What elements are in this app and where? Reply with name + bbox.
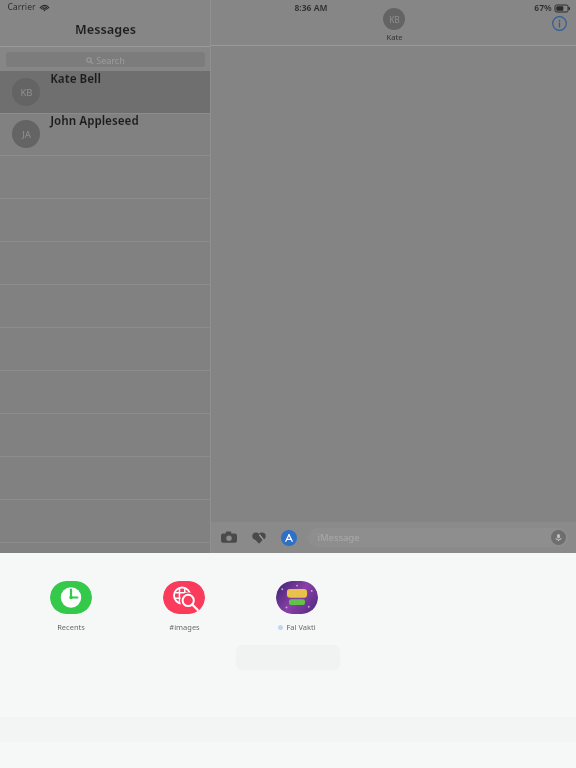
staticText: John Appleseed bbox=[50, 113, 139, 129]
staticText: #images bbox=[169, 622, 200, 632]
button[interactable]: #images bbox=[149, 581, 219, 632]
staticText: Fal Vakti bbox=[286, 622, 316, 632]
staticText: JA bbox=[22, 128, 31, 141]
button[interactable]: Camera bbox=[219, 528, 239, 548]
button[interactable]: JA bbox=[0, 113, 211, 155]
staticText: Carrier bbox=[7, 1, 36, 13]
staticText: Kate Bell bbox=[50, 71, 101, 87]
button[interactable]: Fal Vakti bbox=[262, 581, 332, 632]
button[interactable]: App Store bbox=[279, 528, 299, 548]
staticText: KB bbox=[20, 86, 33, 99]
staticText: Recents bbox=[57, 622, 85, 632]
button[interactable]: iMessage bbox=[308, 528, 568, 547]
button[interactable]: Details bbox=[550, 14, 568, 32]
staticText: Messages bbox=[75, 21, 136, 38]
staticText: 8:36 AM bbox=[294, 2, 328, 14]
button[interactable]: KB bbox=[0, 71, 211, 113]
staticText: iMessage bbox=[317, 531, 360, 544]
staticText: Search bbox=[96, 54, 125, 66]
other: Dictate bbox=[551, 530, 566, 545]
staticText: Kate bbox=[386, 32, 403, 42]
staticText: 67% bbox=[534, 2, 552, 14]
staticText: KB bbox=[389, 14, 400, 25]
button[interactable]: Digital Touch bbox=[249, 528, 269, 548]
button[interactable]: Search bbox=[6, 52, 205, 67]
button[interactable]: KB bbox=[383, 8, 405, 42]
button[interactable]: Recents bbox=[36, 581, 106, 632]
